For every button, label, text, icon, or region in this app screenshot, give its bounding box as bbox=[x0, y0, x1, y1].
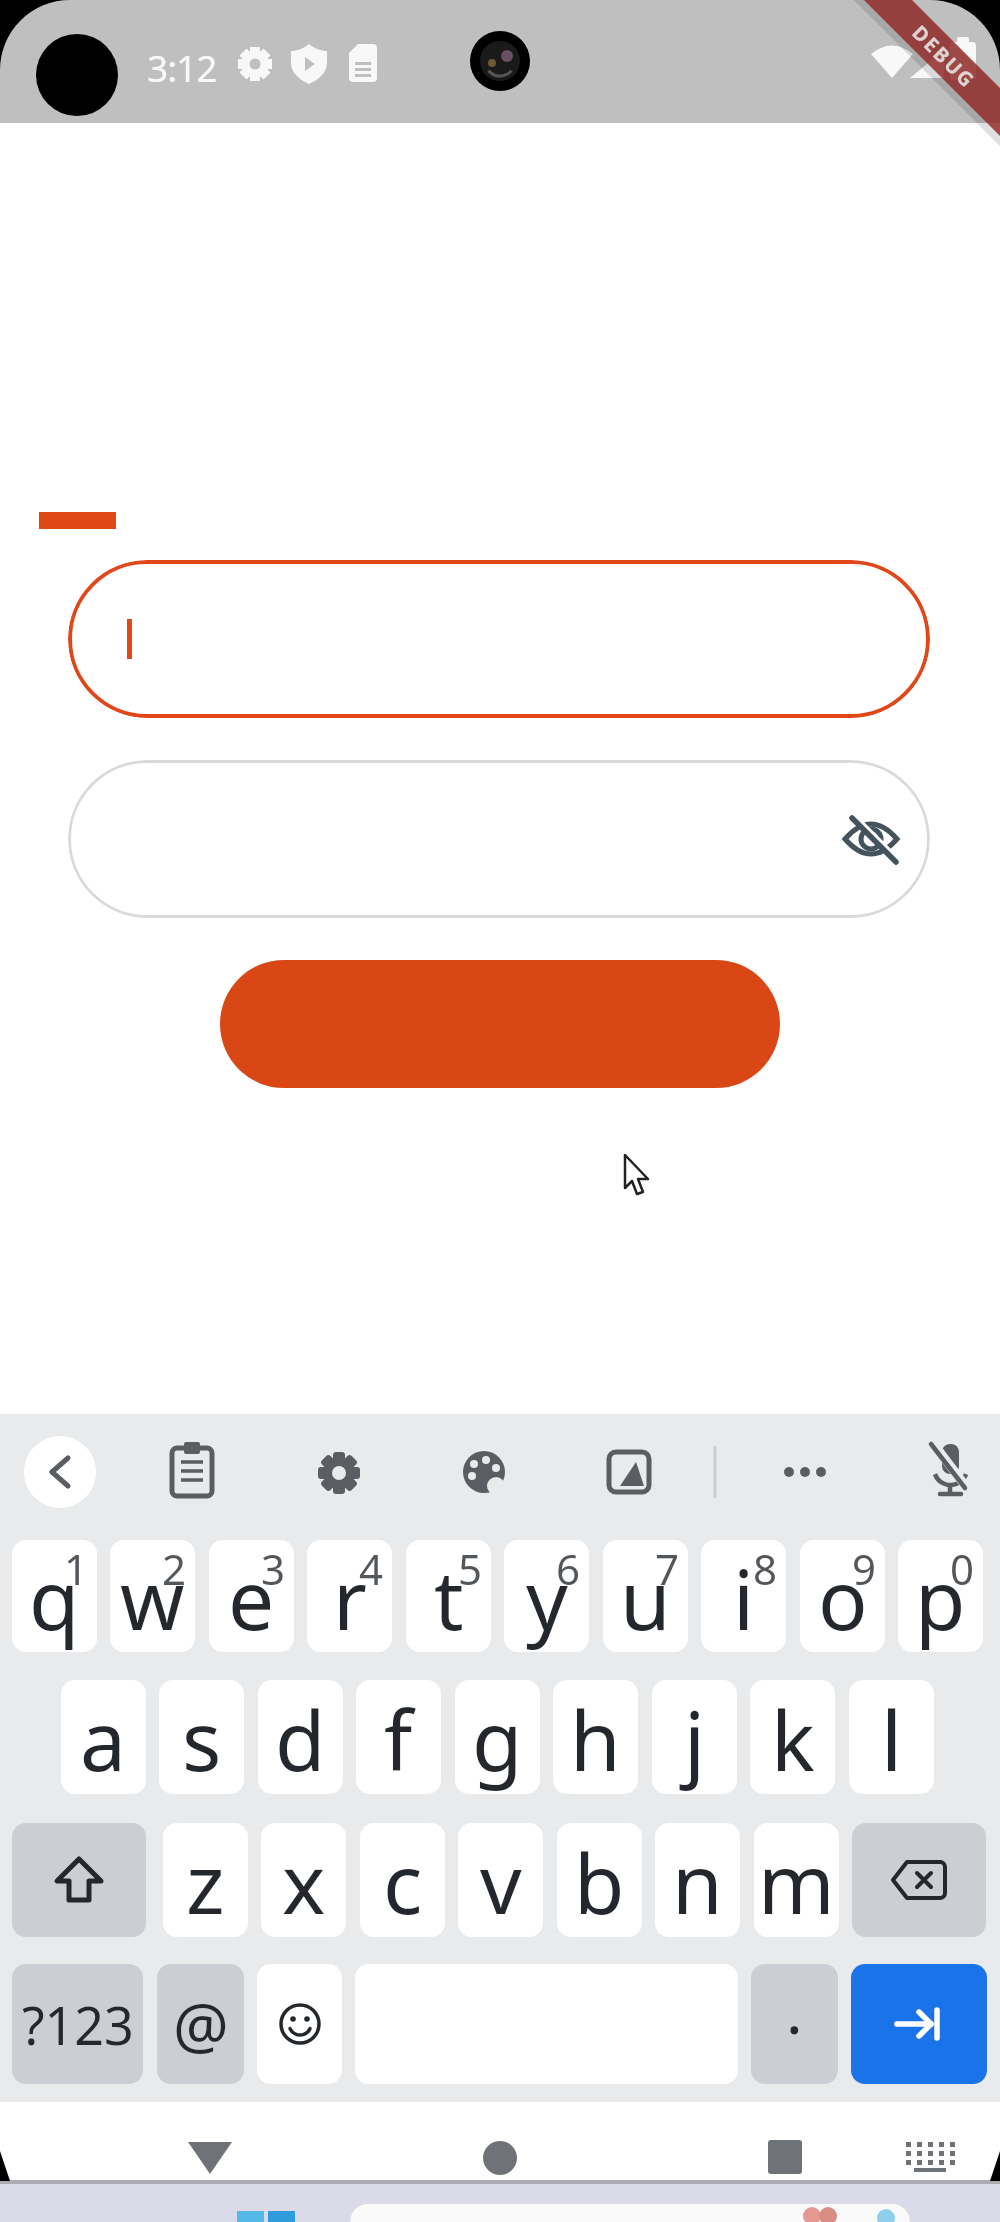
button[interactable] bbox=[597, 1440, 661, 1504]
button[interactable] bbox=[68, 560, 930, 718]
staticText: f bbox=[384, 1683, 413, 1794]
staticText: 3:12 bbox=[147, 42, 217, 92]
button[interactable] bbox=[307, 1440, 371, 1504]
staticText: DEBUG bbox=[906, 19, 981, 94]
staticText: e bbox=[228, 1542, 275, 1652]
button[interactable] bbox=[843, 813, 899, 865]
button[interactable]: f bbox=[356, 1680, 441, 1794]
button[interactable] bbox=[220, 960, 780, 1088]
staticText: g bbox=[472, 1683, 523, 1794]
button[interactable] bbox=[452, 1440, 516, 1504]
button[interactable]: ?123 bbox=[12, 1964, 143, 2084]
button[interactable] bbox=[24, 1436, 96, 1508]
button[interactable]: k bbox=[750, 1680, 835, 1794]
staticText: s bbox=[182, 1683, 222, 1794]
button[interactable] bbox=[745, 2120, 825, 2178]
button[interactable]: b bbox=[557, 1823, 642, 1937]
staticText: a bbox=[80, 1683, 127, 1794]
staticText: x bbox=[282, 1826, 326, 1937]
button[interactable]: 8 bbox=[701, 1540, 786, 1652]
staticText: m bbox=[758, 1826, 835, 1937]
button[interactable]: s bbox=[159, 1680, 244, 1794]
staticText: 7 bbox=[655, 1540, 680, 1597]
staticText: 1 bbox=[64, 1540, 89, 1597]
staticText: l bbox=[881, 1683, 903, 1794]
staticText: c bbox=[383, 1826, 423, 1937]
button[interactable]: . bbox=[751, 1964, 838, 2084]
staticText: v bbox=[480, 1826, 522, 1937]
staticText: r bbox=[333, 1542, 367, 1652]
button[interactable] bbox=[852, 1823, 986, 1937]
button[interactable]: 3 bbox=[209, 1540, 294, 1652]
button[interactable]: 6 bbox=[504, 1540, 589, 1652]
staticText: 6 bbox=[556, 1540, 581, 1597]
button[interactable]: 0 bbox=[898, 1540, 983, 1652]
button[interactable]: 2 bbox=[110, 1540, 195, 1652]
staticText: p bbox=[915, 1542, 966, 1652]
button[interactable]: n bbox=[655, 1823, 740, 1937]
button[interactable]: l bbox=[849, 1680, 934, 1794]
button[interactable] bbox=[257, 1964, 342, 2084]
staticText: 9 bbox=[852, 1540, 877, 1597]
button[interactable]: x bbox=[261, 1823, 346, 1937]
staticText: y bbox=[526, 1542, 568, 1652]
staticText: @ bbox=[173, 1982, 229, 2066]
button[interactable]: @ bbox=[157, 1964, 244, 2084]
button[interactable]: d bbox=[258, 1680, 343, 1794]
staticText: b bbox=[574, 1826, 625, 1937]
staticText: w bbox=[120, 1542, 185, 1652]
staticText: z bbox=[186, 1826, 225, 1937]
staticText: 5 bbox=[458, 1540, 483, 1597]
staticText: o bbox=[818, 1542, 868, 1652]
button[interactable]: h bbox=[553, 1680, 638, 1794]
staticText: n bbox=[672, 1826, 723, 1937]
staticText: k bbox=[771, 1683, 815, 1794]
button[interactable] bbox=[460, 2120, 540, 2178]
button[interactable] bbox=[68, 760, 930, 918]
button[interactable]: j bbox=[652, 1680, 737, 1794]
staticText: j bbox=[684, 1683, 706, 1794]
button[interactable]: c bbox=[360, 1823, 445, 1937]
button[interactable]: g bbox=[455, 1680, 540, 1794]
staticText: ?123 bbox=[22, 1989, 134, 2060]
staticText: i bbox=[733, 1542, 755, 1652]
button[interactable]: 9 bbox=[800, 1540, 885, 1652]
button[interactable]: 1 bbox=[12, 1540, 97, 1652]
button[interactable] bbox=[918, 1440, 982, 1504]
staticText: 8 bbox=[753, 1540, 778, 1597]
staticText: t bbox=[434, 1542, 464, 1652]
button[interactable]: v bbox=[458, 1823, 543, 1937]
button[interactable] bbox=[12, 1823, 146, 1937]
staticText: q bbox=[29, 1542, 80, 1652]
staticText: 0 bbox=[950, 1540, 975, 1597]
staticText: 4 bbox=[359, 1540, 384, 1597]
staticText: h bbox=[570, 1683, 621, 1794]
button[interactable]: a bbox=[61, 1680, 146, 1794]
button[interactable] bbox=[773, 1440, 837, 1504]
button[interactable] bbox=[851, 1964, 987, 2084]
button[interactable]: m bbox=[754, 1823, 839, 1937]
button[interactable]: z bbox=[163, 1823, 248, 1937]
staticText: 3 bbox=[261, 1540, 286, 1597]
button[interactable]: 7 bbox=[603, 1540, 688, 1652]
button[interactable] bbox=[160, 1440, 224, 1504]
button[interactable] bbox=[170, 2120, 250, 2178]
staticText: u bbox=[620, 1542, 671, 1652]
staticText: d bbox=[275, 1683, 326, 1794]
staticText: 2 bbox=[162, 1540, 187, 1597]
button[interactable]: 5 bbox=[406, 1540, 491, 1652]
staticText: . bbox=[786, 1968, 803, 2052]
button[interactable]: 4 bbox=[307, 1540, 392, 1652]
